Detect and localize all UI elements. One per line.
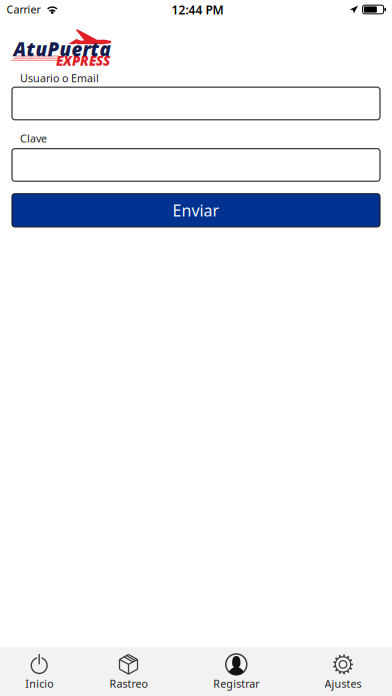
staticText: AtuPuerta [13,37,110,61]
staticText: Registrar [213,676,259,691]
button[interactable]: Ajustes [294,647,392,696]
staticText: EXPRESS [56,52,110,69]
button[interactable]: Rastreo [78,647,179,696]
staticText: Rastreo [109,676,147,691]
staticText: Ajustes [324,676,361,691]
button[interactable]: Inicio [0,647,78,696]
button[interactable]: Registrar [179,647,294,696]
staticText: Usuario o Email [20,71,99,85]
staticText: 12:44 PM [171,2,223,18]
staticText: Inicio [25,676,53,691]
button[interactable]: Enviar [12,194,380,227]
staticText: Carrier [7,2,41,16]
staticText: Enviar [172,200,219,221]
staticText: Clave [20,131,47,145]
